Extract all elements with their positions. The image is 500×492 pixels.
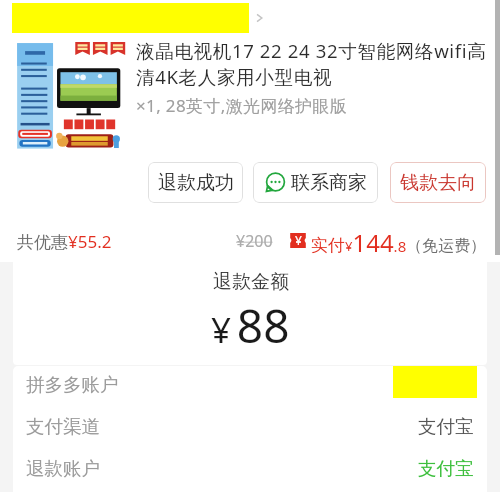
staticText: 支付渠道 <box>26 415 100 438</box>
button[interactable]: 退款账户 <box>13 447 487 489</box>
staticText: ¥ <box>295 232 302 248</box>
staticText: 退款账户 <box>26 457 100 480</box>
button[interactable]: 钱款去向 <box>390 162 486 203</box>
staticText: 实付¥144.8（免运费） <box>311 226 487 259</box>
staticText: 退款成功 <box>158 171 234 195</box>
staticText: 联系商家 <box>291 171 367 195</box>
staticText: 液晶电视机17 22 24 32寸智能网络wifi高清4K老人家用小型电视 <box>136 38 487 90</box>
button[interactable]: 联系商家 <box>253 162 378 203</box>
staticText: ¥200 <box>236 230 273 252</box>
staticText: 支付宝 <box>418 457 474 480</box>
staticText: 支付宝 <box>418 415 474 438</box>
staticText: 拼多多账户 <box>26 373 119 396</box>
button[interactable]: Shop <box>0 0 500 36</box>
other: Shop <box>252 11 266 25</box>
button[interactable]: 拼多多账户 <box>13 363 487 405</box>
staticText: ¥ 88 <box>211 294 290 357</box>
staticText: ×1, 28英寸,激光网络护眼版 <box>136 94 348 117</box>
button[interactable]: 退款成功 <box>148 162 243 203</box>
staticText: 退款金额 <box>213 270 289 294</box>
staticText: 共优惠¥55.2 <box>17 230 112 253</box>
button[interactable]: 支付渠道 <box>13 405 487 447</box>
staticText: 钱款去向 <box>400 171 476 195</box>
